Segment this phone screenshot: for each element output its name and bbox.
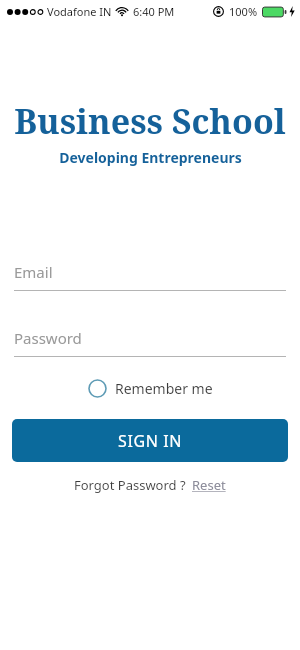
staticText: Forgot Password ? [74, 476, 186, 494]
staticText: Vodafone IN [47, 4, 112, 19]
staticText: Developing Entrepreneurs [59, 148, 242, 167]
staticText: Remember me [115, 379, 213, 398]
button[interactable]: Email [14, 262, 286, 291]
button[interactable]: Reset [191, 474, 227, 496]
button[interactable]: SIGN IN [12, 419, 288, 462]
button[interactable]: Password [14, 328, 286, 357]
staticText: Email [14, 262, 53, 282]
staticText: 6:40 PM [133, 4, 175, 19]
staticText: 100% [229, 4, 258, 19]
staticText: Reset [192, 476, 226, 494]
staticText: SIGN IN [118, 430, 182, 452]
button[interactable]: Remember me [84, 375, 217, 402]
staticText: Password [14, 328, 82, 348]
staticText: Business School [14, 98, 286, 144]
